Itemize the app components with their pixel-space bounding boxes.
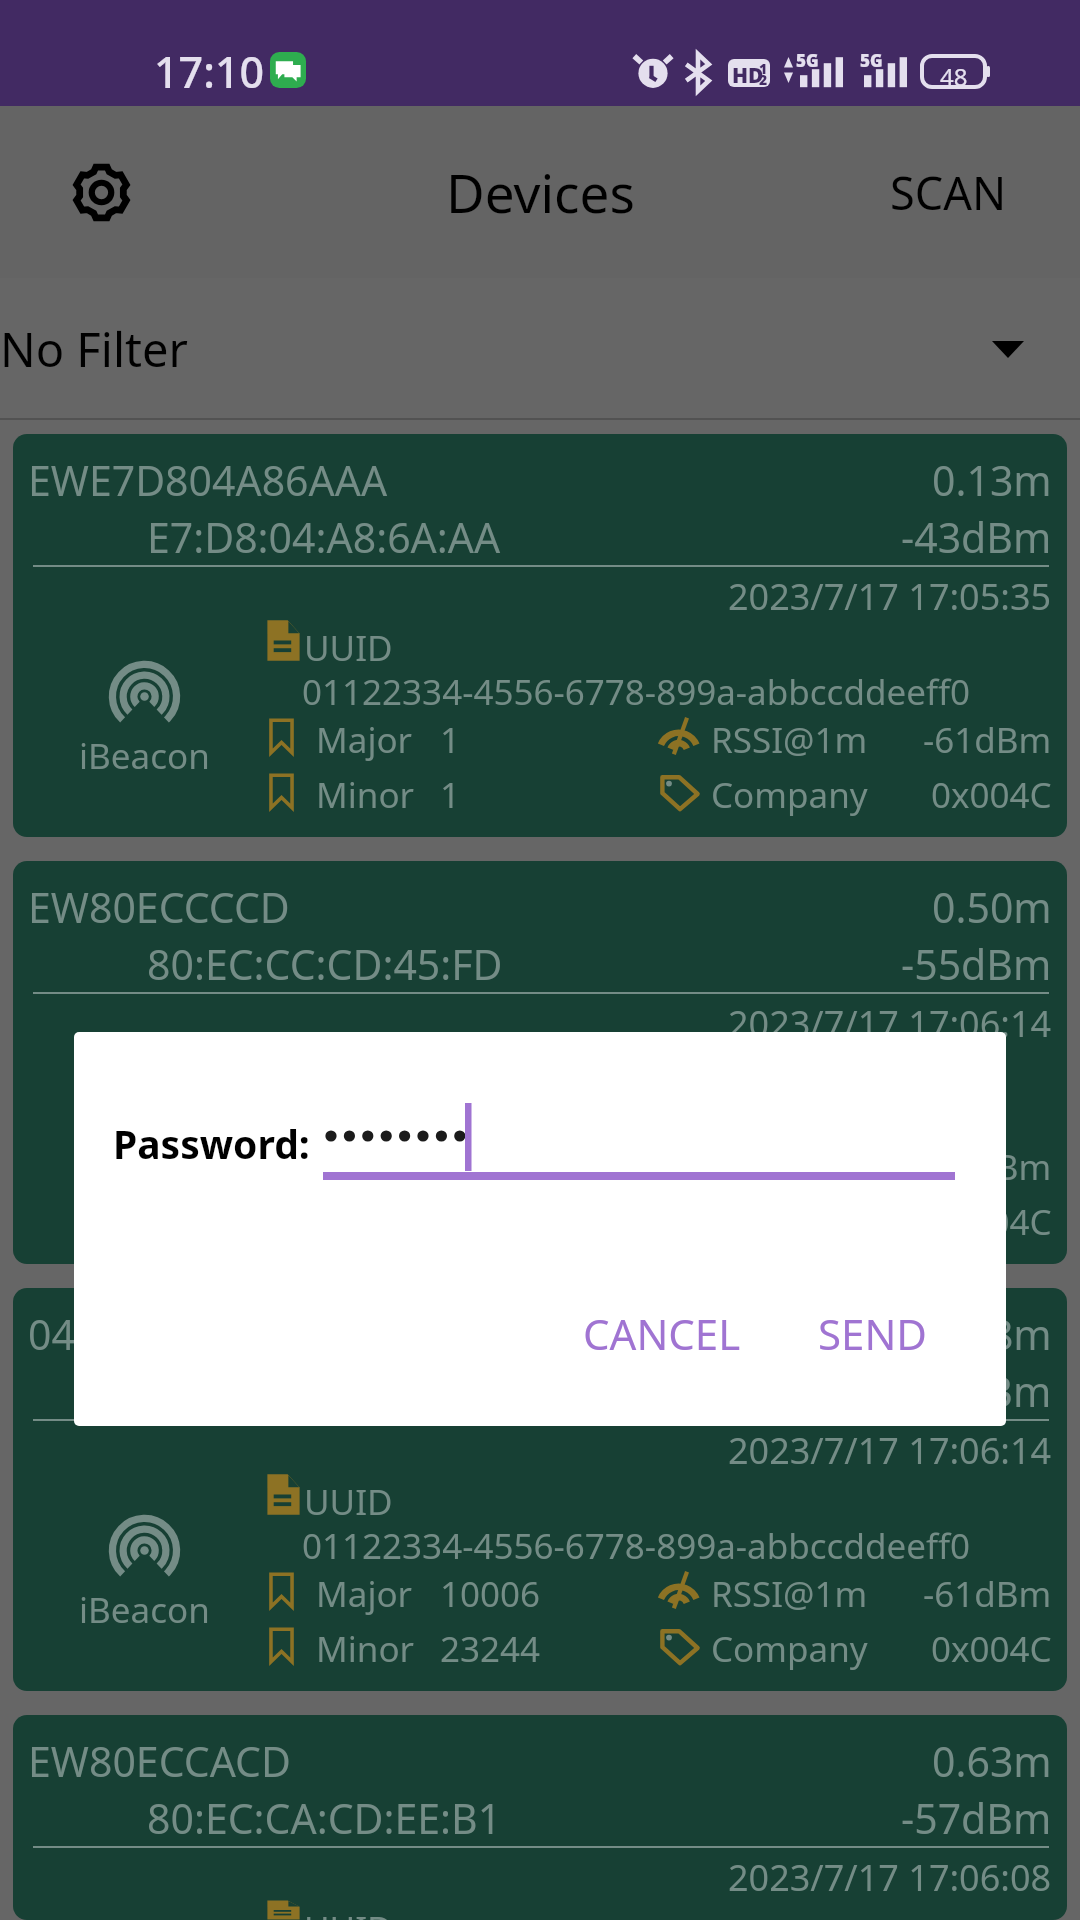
staticText: EW80ECCCCD [28,879,290,935]
staticText: UUID [304,624,393,672]
staticText: 0.63m [932,1733,1052,1789]
staticText: iBeacon [79,1586,210,1634]
staticText: 2 [759,70,768,87]
staticText: 1 [440,716,461,764]
staticText: -43dBm [901,509,1052,565]
staticText: RSSI@1m [711,1570,868,1618]
staticText: 80:EC:CC:CD:45:FD [147,936,503,992]
staticText: RSSI@1m [711,716,868,764]
staticText: 17:10 [154,42,265,101]
staticText: 10006 [440,1143,541,1191]
staticText: -61dBm [923,1143,1052,1191]
staticText: 2023/7/17 17:06:14 [728,999,1052,1048]
staticText: 5G [796,49,819,72]
staticText: 0x004C [931,771,1052,819]
staticText: 2023/7/17 17:05:35 [728,572,1052,621]
staticText: CANCEL [583,1305,741,1362]
staticText: -61dBm [923,1570,1052,1618]
staticText: SCAN [890,162,1007,223]
staticText: 2023/7/17 17:06:14 [728,1426,1052,1475]
staticText: Major [316,1143,413,1191]
staticText: 01122334-4556-6778-899a-abbccddeeff0 [302,1095,971,1143]
staticText: Major [316,1570,413,1618]
staticText: -58dBm [901,1363,1052,1419]
staticText: RSSI@1m [711,1143,868,1191]
staticText: EW80ECCACD [28,1733,291,1789]
staticText: -57dBm [901,1790,1052,1846]
staticText: 5G [860,49,883,72]
staticText: UUID [304,1478,393,1526]
staticText: Minor [316,771,415,819]
button[interactable]: SEND [794,1281,951,1386]
staticText: -61dBm [923,716,1052,764]
staticText: 0x004C [931,1625,1052,1673]
staticText: 10006 [440,1570,541,1618]
staticText: 04EF2D9C7A11 [28,1306,319,1362]
staticText: Major [316,716,413,764]
staticText: Company [711,1625,868,1673]
staticText: Company [711,771,868,819]
staticText: 0.50m [932,879,1052,935]
staticText: No Filter [0,317,188,381]
button[interactable]: EW80ECCCCD [13,861,1067,1264]
staticText: 0.13m [932,452,1052,508]
button[interactable]: No Filter [0,278,1080,420]
staticText: 80:EC:CA:CD:EE:B1 [147,1790,502,1846]
other: Open filter [992,341,1024,358]
button[interactable]: 04EF2D9C7A11 [13,1288,1067,1691]
staticText: 2023/7/17 17:06:08 [728,1853,1052,1902]
button[interactable]: CANCEL [559,1281,765,1386]
staticText: UUID [304,1905,393,1920]
staticText: -55dBm [901,936,1052,992]
button[interactable]: EW80ECCACD [13,1715,1067,1920]
staticText: 0x004C [931,1198,1052,1246]
button[interactable]: Settings [72,163,131,222]
staticText: 0.78m [932,1306,1052,1362]
staticText: Minor [316,1625,415,1673]
staticText: 1 [440,771,461,819]
staticText: E7:D8:04:A8:6A:AA [147,509,501,565]
staticText: iBeacon [79,732,210,780]
staticText: Devices [446,156,635,228]
staticText: Password: [113,1117,310,1170]
staticText: 23244 [440,1625,541,1673]
button[interactable]: SCAN [890,162,1007,223]
staticText: 48 [940,60,968,93]
staticText: HD [732,61,764,87]
staticText: 1 [759,59,768,78]
staticText: SEND [818,1305,927,1362]
staticText: 01122334-4556-6778-899a-abbccddeeff0 [302,668,971,716]
staticText: EWE7D804A86AAA [28,452,388,508]
button[interactable]: EWE7D804A86AAA [13,434,1067,837]
staticText: 01122334-4556-6778-899a-abbccddeeff0 [302,1522,971,1570]
